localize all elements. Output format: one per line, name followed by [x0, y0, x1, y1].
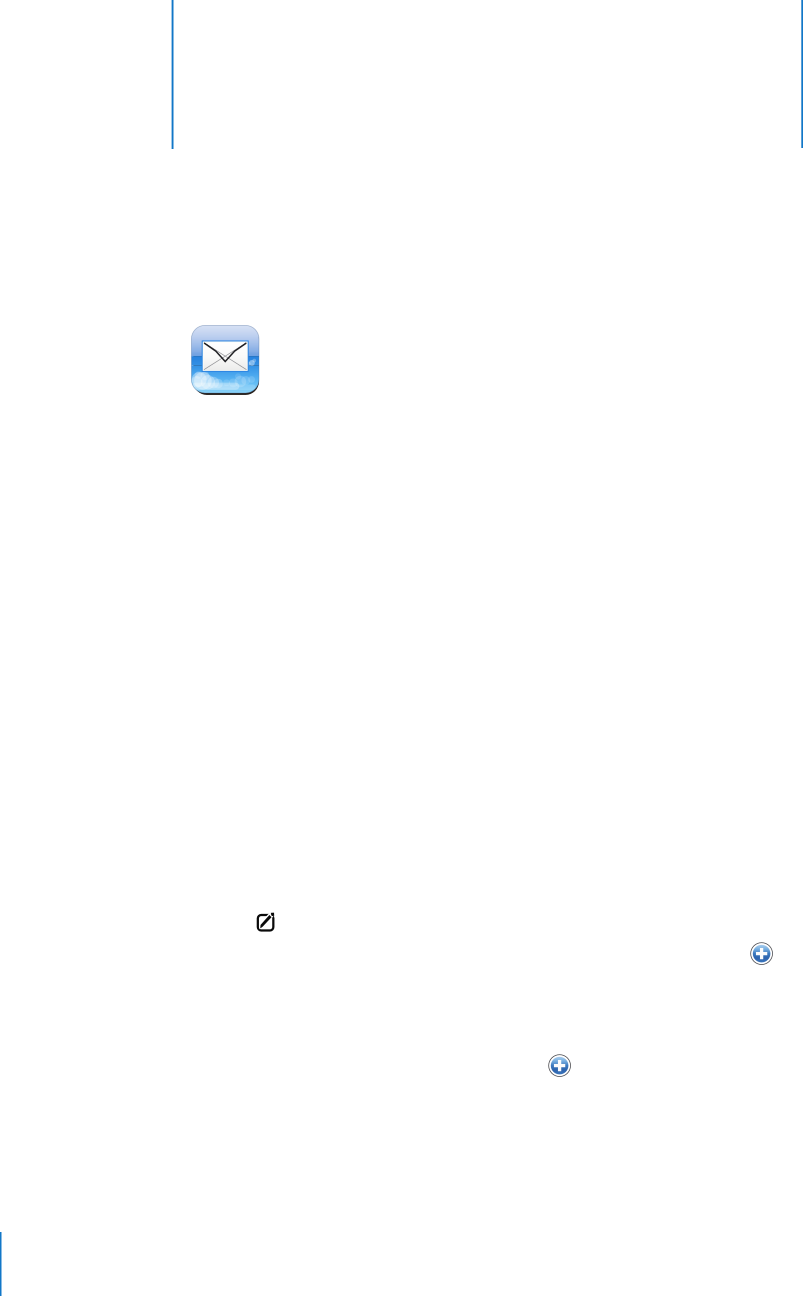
button[interactable]: Compose [256, 912, 275, 930]
button[interactable]: Add [749, 941, 774, 966]
button[interactable]: Add [547, 1053, 572, 1078]
